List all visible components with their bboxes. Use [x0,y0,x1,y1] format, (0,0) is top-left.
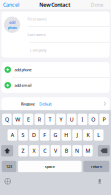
button[interactable]: return [83,161,109,172]
staticText: W [15,116,20,123]
button[interactable]: I [78,114,87,125]
staticText: T [49,116,52,123]
staticText: A [11,131,14,139]
button[interactable]: Q [2,114,12,125]
staticText: L [97,131,100,139]
staticText: 123 [6,164,12,169]
button[interactable]: L [94,129,103,141]
button[interactable]: Y [56,114,66,125]
button[interactable]: Cancel [3,1,19,8]
button[interactable]: D [29,129,39,141]
staticText: F [43,131,46,139]
staticText: Company [29,47,46,53]
button[interactable]: M [83,145,93,156]
button[interactable]: Add photo [4,17,20,33]
button[interactable]: A [7,129,17,141]
button[interactable]: Emoji keyboard [4,178,11,185]
button[interactable]: P [99,114,109,125]
staticText: H [64,131,68,139]
button[interactable]: Ringtone [1,97,109,110]
staticText: N [75,147,79,154]
button[interactable]: Dictate [96,178,103,185]
staticText: J [77,131,78,139]
staticText: K [86,131,89,139]
staticText: P [103,116,106,123]
button[interactable]: space [18,161,81,172]
staticText: photo [8,25,17,30]
staticText: Done [90,1,103,8]
staticText: Y [59,116,62,123]
button[interactable]: W [13,114,22,125]
staticText: add phone [15,67,32,72]
staticText: Default [39,101,51,106]
button[interactable]: S [18,129,28,141]
button[interactable]: add email [1,78,109,93]
button[interactable]: 123 [2,161,16,172]
staticText: O [91,116,95,123]
button[interactable]: add phone [1,62,109,77]
staticText: Z [22,147,25,154]
button[interactable]: X [29,145,39,156]
staticText: Cancel [3,1,19,8]
staticText: add email [15,83,32,88]
button[interactable]: J [72,129,82,141]
staticText: New Contact [39,1,70,8]
button[interactable]: Delete [98,145,110,156]
staticText: Last name [27,32,45,37]
staticText: B [65,147,68,154]
button[interactable]: E [24,114,33,125]
button[interactable]: T [45,114,55,125]
button[interactable]: B [61,145,71,156]
staticText: X [32,147,35,154]
staticText: return [91,164,102,169]
staticText: space [45,164,55,169]
staticText: G [53,131,57,139]
staticText: R [38,116,41,123]
staticText: V [54,147,57,154]
button[interactable]: U [67,114,76,125]
staticText: add [9,19,15,25]
button[interactable]: F [40,129,49,141]
staticText: S [22,131,25,139]
staticText: D [32,131,36,139]
button[interactable]: Done [90,1,103,8]
staticText: Ringtone [21,101,35,106]
staticText: U [70,116,74,123]
staticText: E [27,116,30,123]
button[interactable]: Shift [1,145,13,156]
button[interactable]: H [61,129,71,141]
button[interactable]: O [88,114,98,125]
staticText: I [81,116,83,123]
staticText: C [43,147,46,154]
button[interactable]: G [51,129,60,141]
staticText: Q [5,116,9,123]
button[interactable]: R [35,114,44,125]
button[interactable]: C [40,145,49,156]
button[interactable]: Z [18,145,28,156]
staticText: First name [27,16,46,22]
button[interactable]: N [72,145,82,156]
button[interactable]: V [51,145,60,156]
staticText: M [85,147,90,154]
button[interactable]: K [83,129,93,141]
